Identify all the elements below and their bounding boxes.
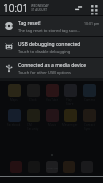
button[interactable]: Music [43,109,61,127]
staticText: Maps [10,98,18,102]
staticText: WEDNESDAY [31,4,49,8]
button[interactable]: Camera [80,84,98,102]
button[interactable]: Dock app 3 [63,161,75,173]
staticText: Play Store [66,98,74,106]
button[interactable]: CM Security [24,109,42,131]
button[interactable]: Quick settings [88,2,100,14]
button[interactable]: Connected as a media device [0,58,103,78]
button[interactable]: YouTube [43,84,61,102]
staticText: Connected as a media device [18,62,87,69]
staticText: Facebook [7,123,21,127]
button[interactable]: Tag reset! [0,16,103,36]
staticText: YouTube [46,98,59,102]
staticText: Camera [84,98,95,102]
staticText: CM Security [27,123,39,131]
button[interactable]: USB debugging connected [0,37,103,57]
button[interactable]: Play Store [61,84,79,106]
staticText: 10:01 pm [84,21,100,26]
staticText: The tag reset to stored tag successfully… [18,28,82,33]
staticText: Touch to disable debugging [18,49,71,54]
staticText: 10:01 [3,1,29,15]
button[interactable]: Signal strength [72,2,84,14]
staticText: Tag reset! [18,20,41,27]
staticText: 31 AUGUST [31,8,48,12]
staticText: Touch for other USB options [18,70,71,75]
staticText: Contact Sync [84,123,95,131]
button[interactable]: Contact Sync [80,109,98,131]
button[interactable]: Facebook [5,109,23,127]
button[interactable]: Maps [5,84,23,102]
button[interactable]: Dock app 2 [46,161,58,173]
button[interactable]: Dock app 0 [10,161,22,173]
button[interactable]: Messenger [61,109,79,127]
staticText: TELENOR [47,166,58,169]
staticText: Music [48,123,57,127]
staticText: Messenger [62,123,78,127]
button[interactable]: Clock [24,84,42,102]
staticText: USB debugging connected [18,41,81,48]
